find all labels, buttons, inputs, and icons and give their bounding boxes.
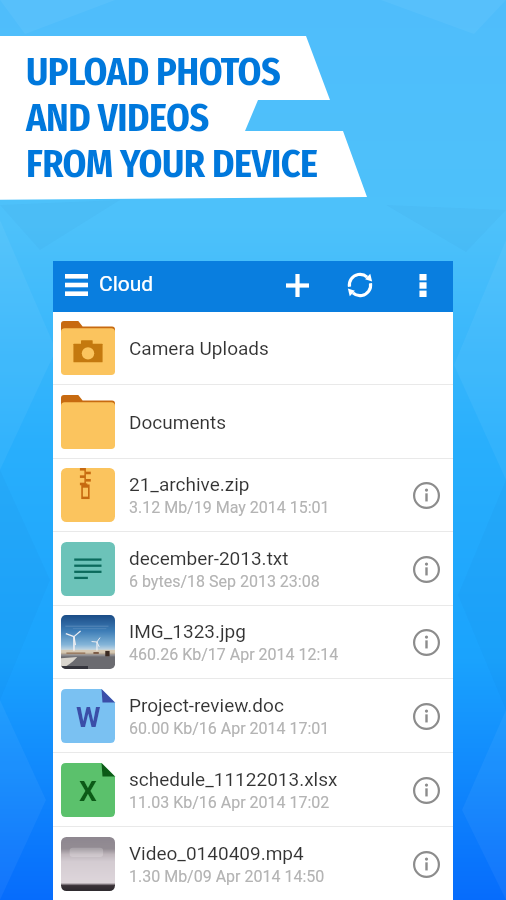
staticText: X	[79, 775, 97, 808]
button[interactable]: File info	[404, 694, 448, 738]
button[interactable]: File info	[404, 842, 448, 886]
button[interactable]: Video_0140409.mp4	[53, 827, 453, 900]
button[interactable]: Cloud	[99, 272, 154, 297]
button[interactable]: december-2013.txt	[53, 532, 453, 605]
staticText: Documents	[129, 411, 226, 433]
button[interactable]: Refresh	[336, 261, 384, 312]
staticText: schedule_11122013.xlsx	[129, 768, 338, 790]
staticText: december-2013.txt	[129, 547, 289, 569]
staticText: Cloud	[99, 272, 154, 297]
button[interactable]: X	[53, 753, 453, 826]
button[interactable]: Open navigation drawer	[53, 261, 100, 312]
button[interactable]: IMG_1323.jpg	[53, 606, 453, 678]
staticText: 3.12 Mb/19 May 2014 15:01	[129, 498, 330, 517]
button[interactable]: File info	[404, 620, 448, 664]
staticText: 460.26 Kb/17 Apr 2014 12:14	[129, 645, 339, 664]
staticText: FROM YOUR DEVICE	[26, 141, 318, 187]
staticText: 6 bytes/18 Sep 2013 23:08	[129, 572, 320, 591]
button[interactable]: File info	[404, 473, 448, 517]
button[interactable]: File info	[404, 547, 448, 591]
button[interactable]: Add	[273, 261, 321, 312]
staticText: 21_archive.zip	[129, 473, 250, 495]
staticText: Project-review.doc	[129, 694, 284, 716]
staticText: 11.03 Kb/16 Apr 2014 17:02	[129, 793, 330, 812]
button[interactable]: File info	[404, 768, 448, 812]
button[interactable]: Camera Uploads	[53, 312, 453, 384]
staticText: IMG_1323.jpg	[129, 620, 246, 642]
staticText: 1.30 Mb/09 Apr 2014 14:50	[129, 867, 325, 886]
staticText: Video_0140409.mp4	[129, 842, 304, 864]
button[interactable]: 21_archive.zip	[53, 459, 453, 531]
button[interactable]: W	[53, 679, 453, 752]
button[interactable]: More options	[401, 261, 445, 312]
staticText: UPLOAD PHOTOS	[26, 49, 281, 95]
staticText: AND VIDEOS	[26, 95, 209, 141]
staticText: W	[76, 701, 101, 734]
staticText: 60.00 Kb/16 Apr 2014 17:01	[129, 719, 330, 738]
button[interactable]: Documents	[53, 385, 453, 458]
staticText: Camera Uploads	[129, 337, 269, 359]
